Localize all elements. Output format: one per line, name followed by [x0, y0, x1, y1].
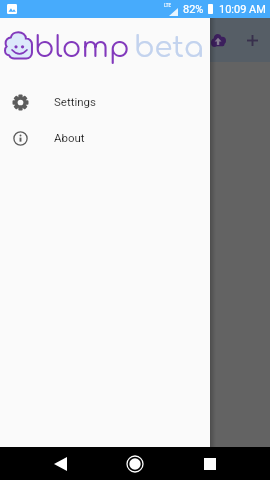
button[interactable]: Back — [42, 447, 78, 480]
staticText: 82% — [183, 3, 204, 16]
button[interactable]: About — [0, 120, 210, 156]
staticText: blomp — [34, 31, 130, 63]
button[interactable]: Upload — [200, 18, 236, 62]
button[interactable]: Home — [117, 447, 153, 480]
staticText: LTE — [164, 3, 172, 8]
staticText: beta — [134, 31, 204, 63]
button[interactable]: Recents — [192, 447, 228, 480]
button[interactable]: Settings — [0, 84, 210, 120]
button[interactable]: Add — [236, 18, 268, 62]
staticText: 10:09 AM — [219, 3, 266, 16]
staticText: About — [54, 131, 85, 144]
staticText: Settings — [54, 95, 96, 108]
